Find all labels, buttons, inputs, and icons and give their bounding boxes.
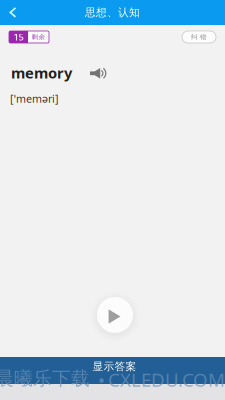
staticText: 15	[13, 31, 23, 43]
button[interactable]: Pronounce word	[90, 68, 107, 79]
staticText: 晨曦乐下载	[0, 367, 90, 390]
button[interactable]: Play audio	[97, 297, 133, 333]
staticText: memory	[11, 63, 72, 82]
button[interactable]: 显示答案	[0, 357, 225, 384]
staticText: CXLEDU.COM	[108, 367, 225, 392]
staticText: •	[98, 367, 105, 392]
staticText: 纠 错	[191, 33, 207, 41]
staticText: 思想、认知	[85, 6, 140, 19]
staticText: 显示答案	[92, 360, 136, 373]
staticText: 剩余	[31, 33, 45, 41]
button[interactable]: 纠 错	[182, 31, 216, 43]
staticText: [ˈmeməri]	[10, 91, 59, 106]
button[interactable]: Back	[0, 0, 26, 25]
